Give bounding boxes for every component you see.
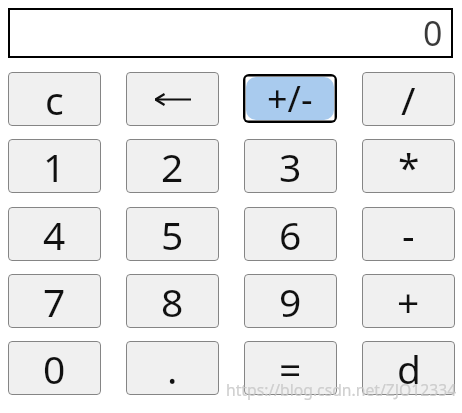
button[interactable]: d xyxy=(362,341,455,395)
staticText: d xyxy=(397,342,421,395)
button[interactable]: = xyxy=(244,341,337,395)
button[interactable]: . xyxy=(126,341,219,395)
staticText: 8 xyxy=(161,275,184,328)
button[interactable]: / xyxy=(362,72,455,126)
button[interactable]: + xyxy=(362,274,455,328)
button[interactable]: 0 xyxy=(8,341,101,395)
staticText: - xyxy=(402,208,415,261)
staticText: = xyxy=(279,342,302,395)
button[interactable]: 3 xyxy=(244,139,337,193)
staticText: 3 xyxy=(279,140,302,193)
staticText: * xyxy=(398,140,420,193)
staticText: 9 xyxy=(279,275,302,328)
staticText: 2 xyxy=(161,140,184,193)
button[interactable] xyxy=(126,72,219,126)
staticText: c xyxy=(45,73,64,126)
staticText: + xyxy=(397,275,420,328)
staticText: 5 xyxy=(161,208,184,261)
button[interactable]: 8 xyxy=(126,274,219,328)
button[interactable]: 2 xyxy=(126,139,219,193)
staticText: +/- xyxy=(267,74,313,123)
button[interactable]: - xyxy=(362,207,455,261)
staticText: 0 xyxy=(43,342,66,395)
button[interactable]: 4 xyxy=(8,207,101,261)
button[interactable]: 1 xyxy=(8,139,101,193)
button[interactable]: c xyxy=(8,72,101,126)
staticText: 4 xyxy=(43,208,66,261)
staticText: 7 xyxy=(43,275,66,328)
staticText: / xyxy=(401,73,416,126)
button[interactable]: +/- xyxy=(243,74,337,123)
staticText: 0 xyxy=(423,10,443,56)
staticText: https://blog.csdn.net/ZJO12334 xyxy=(226,379,457,400)
button[interactable]: * xyxy=(362,139,455,193)
staticText: 6 xyxy=(279,208,302,261)
staticText: . xyxy=(167,342,178,395)
button[interactable]: 7 xyxy=(8,274,101,328)
button[interactable]: 9 xyxy=(244,274,337,328)
staticText: 1 xyxy=(43,140,66,193)
button[interactable]: 5 xyxy=(126,207,219,261)
button[interactable]: 6 xyxy=(244,207,337,261)
